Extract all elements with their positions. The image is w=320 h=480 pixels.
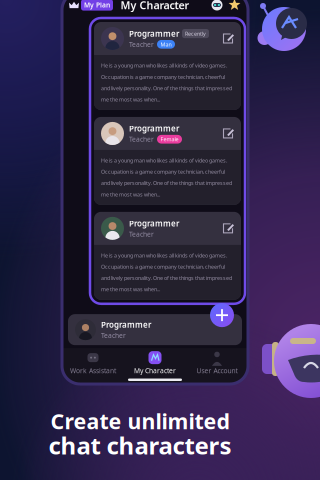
- staticText: Man: [160, 41, 171, 48]
- staticText: My Plan: [84, 1, 110, 9]
- button[interactable]: Work Assistant: [62, 351, 124, 375]
- button[interactable]: Add character: [210, 303, 234, 327]
- button[interactable]: Assistant: [211, 0, 223, 11]
- staticText: Programmer: [101, 319, 151, 330]
- staticText: User Account: [196, 366, 237, 375]
- staticText: He is a young man who likes all kinds of…: [101, 252, 232, 293]
- staticText: Teacher: [129, 135, 154, 144]
- staticText: My Character: [120, 0, 189, 12]
- staticText: He is a young man who likes all kinds of…: [101, 62, 232, 103]
- staticText: Work Assistant: [70, 366, 116, 375]
- button[interactable]: My Character: [124, 351, 186, 375]
- staticText: Programmer: [129, 218, 179, 229]
- staticText: He is a young man who likes all kinds of…: [101, 157, 232, 198]
- button[interactable]: Edit character: [222, 127, 234, 139]
- staticText: chat characters: [48, 429, 231, 461]
- staticText: My Character: [134, 366, 176, 375]
- button[interactable]: My Plan: [69, 0, 113, 11]
- staticText: Teacher: [129, 40, 154, 49]
- staticText: Create unlimited: [50, 407, 229, 435]
- button[interactable]: Edit character: [222, 32, 234, 44]
- staticText: Programmer: [129, 123, 179, 134]
- staticText: Teacher: [101, 331, 126, 340]
- staticText: Female: [160, 136, 178, 143]
- button[interactable]: Favorites: [228, 0, 241, 11]
- button[interactable]: User Account: [186, 351, 248, 375]
- staticText: Programmer: [129, 28, 179, 39]
- button[interactable]: Edit character: [222, 222, 234, 234]
- staticText: Teacher: [129, 230, 154, 239]
- staticText: Recently: [185, 30, 206, 37]
